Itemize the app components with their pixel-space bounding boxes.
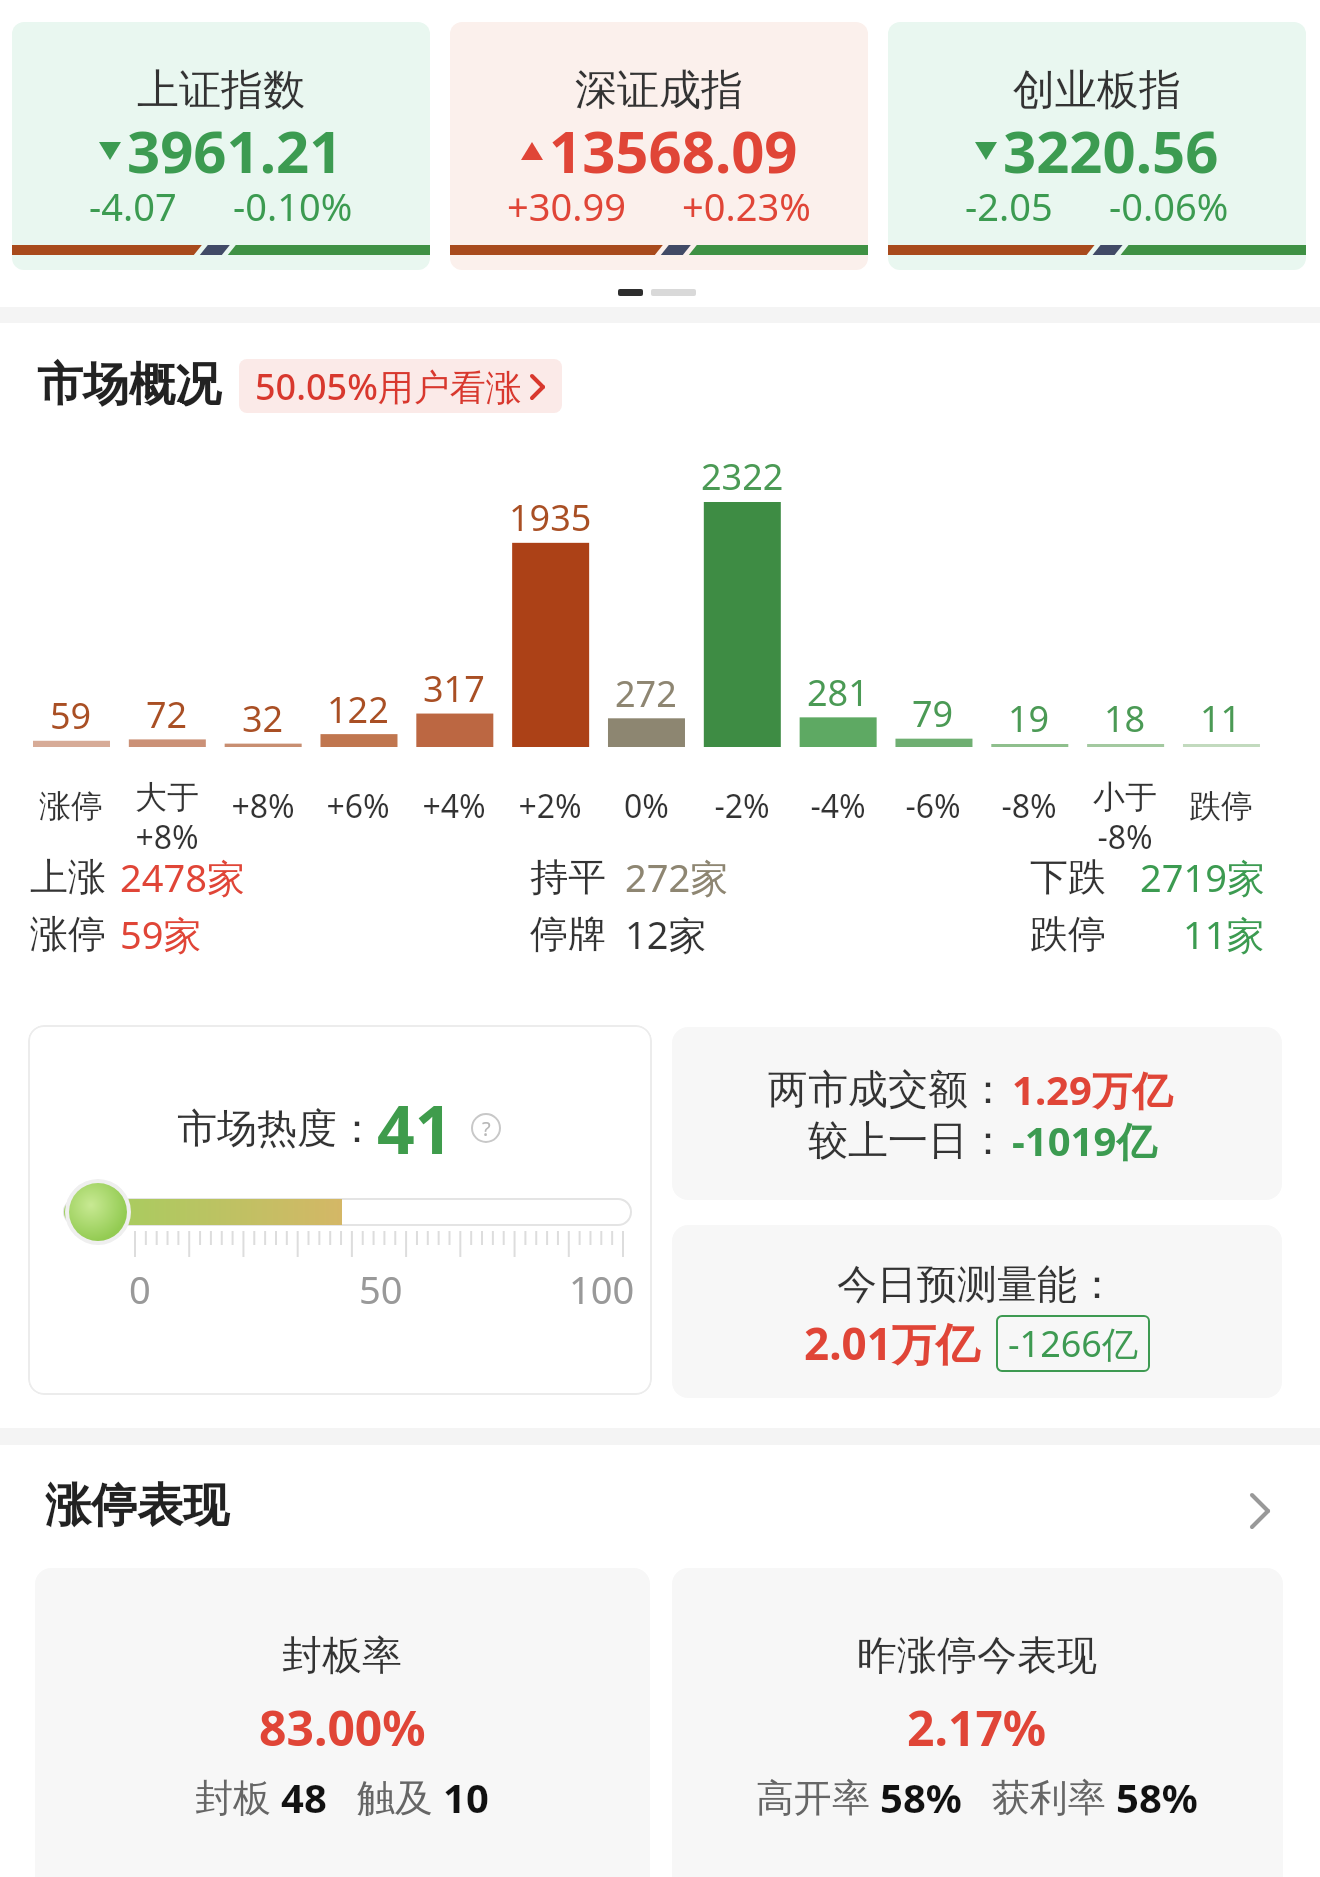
staticText: ? — [482, 1115, 491, 1142]
staticText: -6% — [905, 784, 961, 828]
staticText: +4% — [422, 784, 486, 828]
staticText: 272家 — [625, 851, 729, 903]
staticText: 上涨 — [30, 853, 106, 901]
staticText: 涨停 — [39, 786, 103, 826]
staticText: 两市成交额： — [768, 1064, 1008, 1114]
staticText: 上证指数 — [137, 64, 305, 117]
staticText: +8% — [231, 784, 295, 828]
staticText: 41 — [377, 1083, 453, 1173]
staticText: 2.01万亿 — [804, 1313, 980, 1373]
staticText: -2.05 — [965, 180, 1053, 232]
button[interactable] — [672, 1568, 1283, 1877]
staticText: 高开率 — [756, 1770, 880, 1822]
staticText: 市场概况 — [37, 356, 221, 414]
staticText: 59 — [50, 691, 92, 740]
staticText: -2% — [714, 784, 770, 828]
staticText: 11 — [1200, 694, 1242, 743]
staticText: 较上一日： — [808, 1115, 1008, 1165]
staticText: 83.00% — [259, 1695, 426, 1760]
staticText: 0% — [624, 784, 669, 828]
staticText: 3961.21 — [127, 111, 343, 190]
staticText: 大于 +8% — [135, 777, 199, 859]
staticText: 272 — [615, 669, 677, 718]
staticText: 12家 — [625, 908, 707, 960]
staticText: 72 — [146, 690, 188, 739]
staticText: -1266亿 — [1008, 1319, 1138, 1368]
staticText: 获利率 — [962, 1770, 1116, 1822]
button[interactable] — [35, 1568, 650, 1877]
staticText: +6% — [326, 784, 390, 828]
button[interactable]: 上证指数 — [12, 22, 430, 270]
staticText: 2478家 — [120, 851, 245, 903]
staticText: 跌停 — [1030, 910, 1106, 958]
staticText: -1019亿 — [1012, 1113, 1157, 1168]
staticText: 涨停 — [30, 910, 106, 958]
staticText: 281 — [807, 668, 869, 717]
staticText: 58% — [1116, 1770, 1198, 1824]
staticText: 深证成指 — [575, 64, 743, 117]
staticText: 下跌 — [1030, 853, 1106, 901]
staticText: 跌停 — [1189, 786, 1253, 826]
staticText: -4.07 — [89, 180, 177, 232]
staticText: 触及 — [327, 1770, 443, 1822]
staticText: 2322 — [701, 452, 784, 501]
staticText: 100 — [569, 1263, 635, 1315]
staticText: 32 — [242, 694, 284, 743]
staticText: -8% — [1001, 784, 1057, 828]
staticText: 市场热度： — [177, 1103, 377, 1153]
staticText: +30.99 — [507, 180, 626, 232]
staticText: 317 — [423, 664, 485, 713]
staticText: 59家 — [120, 908, 202, 960]
staticText: 1935 — [509, 493, 592, 542]
staticText: 封板率 — [282, 1630, 402, 1680]
staticText: 涨停表现 — [45, 1477, 229, 1535]
staticText: 3220.56 — [1003, 111, 1219, 190]
staticText: 停牌 — [530, 910, 606, 958]
staticText: +0.23% — [682, 180, 811, 232]
staticText: 13568.09 — [549, 111, 798, 190]
button[interactable]: 深证成指 — [450, 22, 868, 270]
staticText: 创业板指 — [1013, 64, 1181, 117]
staticText: 1.29万亿 — [1012, 1062, 1172, 1117]
staticText: 11家 — [1183, 908, 1265, 960]
button[interactable]: 50.05%用户看涨 — [239, 359, 562, 413]
staticText: 122 — [327, 685, 389, 734]
button[interactable] — [1248, 1492, 1274, 1530]
staticText: +2% — [518, 784, 582, 828]
staticText: 今日预测量能： — [837, 1259, 1117, 1309]
staticText: -4% — [810, 784, 866, 828]
staticText: 48 — [281, 1770, 327, 1824]
staticText: 2.17% — [907, 1695, 1047, 1760]
staticText: 79 — [912, 689, 954, 738]
staticText: 50.05%用户看涨 — [255, 362, 522, 411]
staticText: 持平 — [530, 853, 606, 901]
staticText: 10 — [443, 1770, 489, 1824]
staticText: 18 — [1104, 694, 1146, 743]
staticText: 0 — [129, 1263, 151, 1315]
staticText: 50 — [359, 1263, 403, 1315]
staticText: 19 — [1008, 694, 1050, 743]
staticText: 58% — [880, 1770, 962, 1824]
staticText: 小于 -8% — [1093, 777, 1157, 859]
button[interactable]: 创业板指 — [888, 22, 1306, 270]
staticText: -0.06% — [1109, 180, 1229, 232]
staticText: 昨涨停今表现 — [857, 1630, 1097, 1680]
staticText: -0.10% — [233, 180, 353, 232]
staticText: 封板 — [195, 1770, 281, 1822]
staticText: 2719家 — [1140, 851, 1265, 903]
